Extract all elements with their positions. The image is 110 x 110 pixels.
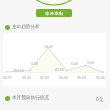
staticText: 9.60: [87, 60, 94, 65]
staticText: 05-04: [59, 75, 68, 80]
staticText: 05-06: [96, 75, 105, 80]
button[interactable]: 本月支出: [36, 9, 72, 17]
staticText: 5.40: [71, 61, 78, 66]
button[interactable]: 支出趋势分析: [5, 24, 40, 30]
staticText: 本月支出: [45, 11, 64, 16]
staticText: 41.59: [55, 67, 64, 72]
staticText: 本月预算执行情况: [12, 95, 49, 101]
staticText: 14.26: [44, 44, 53, 49]
staticText: 支出趋势分析: [12, 24, 40, 30]
staticText: 05-01: [3, 75, 12, 80]
staticText: 05-05: [77, 75, 86, 80]
staticText: 304.68: [13, 68, 24, 73]
staticText: 05-02: [22, 75, 31, 80]
staticText: 05-03: [40, 75, 49, 80]
button[interactable]: 本月预算执行情况: [5, 95, 49, 101]
staticText: 0元: [96, 96, 104, 102]
staticText: 3.98: [31, 61, 38, 66]
